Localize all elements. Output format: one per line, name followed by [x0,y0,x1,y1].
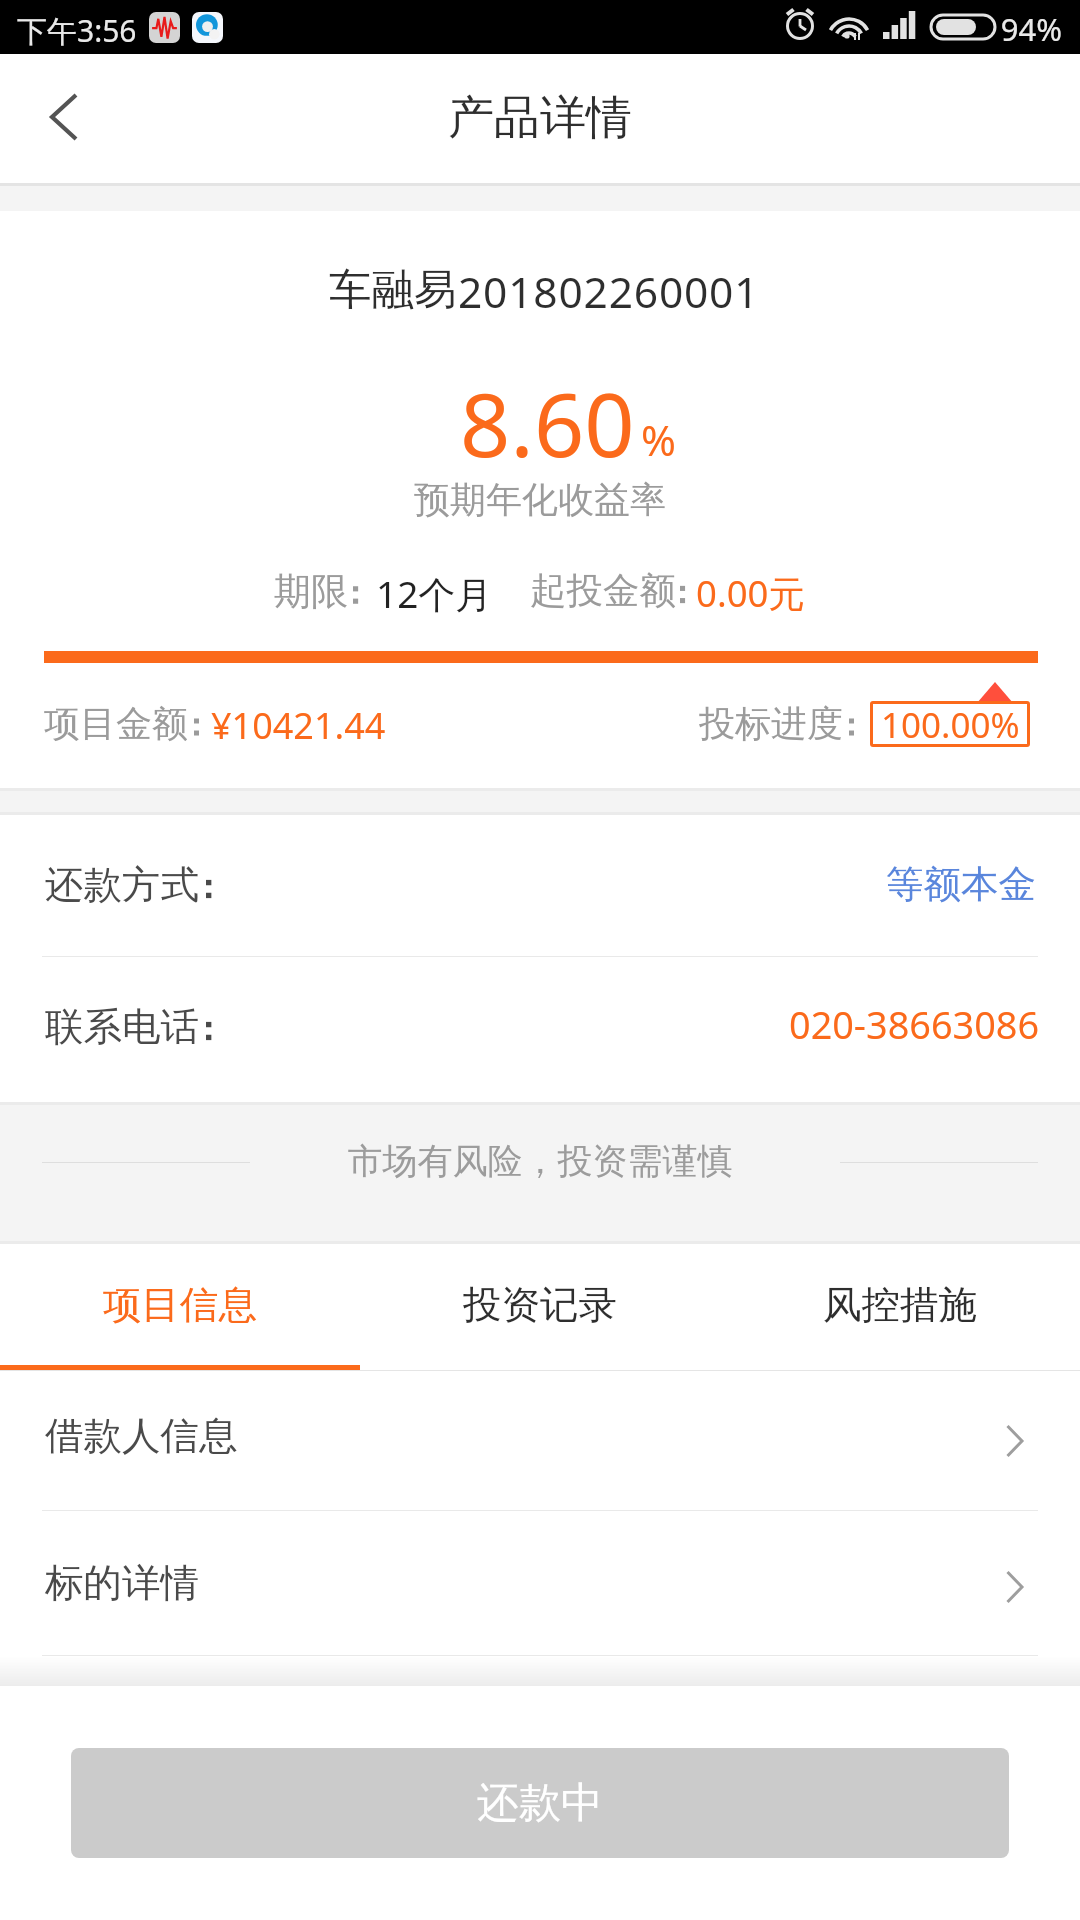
staticText: 020-38663086 [339,999,1039,1050]
staticText: 下午3:56 [17,10,137,51]
staticText: 等额本金 [336,861,1036,908]
button[interactable]: 风控措施 [720,1244,1080,1365]
staticText: ¥10421.44 [211,701,386,750]
staticText: 风控措施 [823,1281,977,1330]
staticText: 期限 [274,568,348,615]
staticText: 标的详情 [45,1559,199,1608]
staticText: 车融易 [329,263,457,317]
staticText: 起投金额 [530,568,676,614]
button[interactable]: Back [4,62,114,172]
staticText: 94% [862,8,1062,50]
staticText: 100.00% [881,701,1020,747]
button[interactable]: 投资记录 [360,1244,720,1365]
staticText: 投标进度 [699,701,843,746]
button[interactable]: 还款中 [71,1748,1009,1858]
button[interactable]: 联系电话 [0,957,1080,1102]
staticText: 12个月 [376,568,493,619]
staticText: 项目金额 [44,701,188,746]
button[interactable]: 借款人信息 [0,1371,1080,1510]
staticText: 投资记录 [463,1281,617,1330]
staticText: 201802260001 [458,263,760,321]
staticText: 预期年化收益率 [0,477,1080,522]
button[interactable]: 项目信息 [0,1244,360,1365]
button[interactable]: 标的详情 [0,1511,1080,1655]
staticText: 还款方式 [45,861,199,910]
staticText: 借款人信息 [45,1412,238,1461]
button[interactable]: 还款方式 [0,815,1080,956]
staticText: 产品详情 [0,89,1080,147]
staticText: 市场有风险，投资需谨慎 [0,1139,1080,1183]
button[interactable]: 100.00% [870,701,1030,747]
staticText: 还款中 [477,1777,603,1830]
staticText: 项目信息 [103,1281,257,1330]
staticText: 联系电话 [45,1003,199,1052]
staticText: 8.60 [460,363,635,483]
staticText: % [641,411,676,468]
staticText: 0.00元 [696,568,805,618]
